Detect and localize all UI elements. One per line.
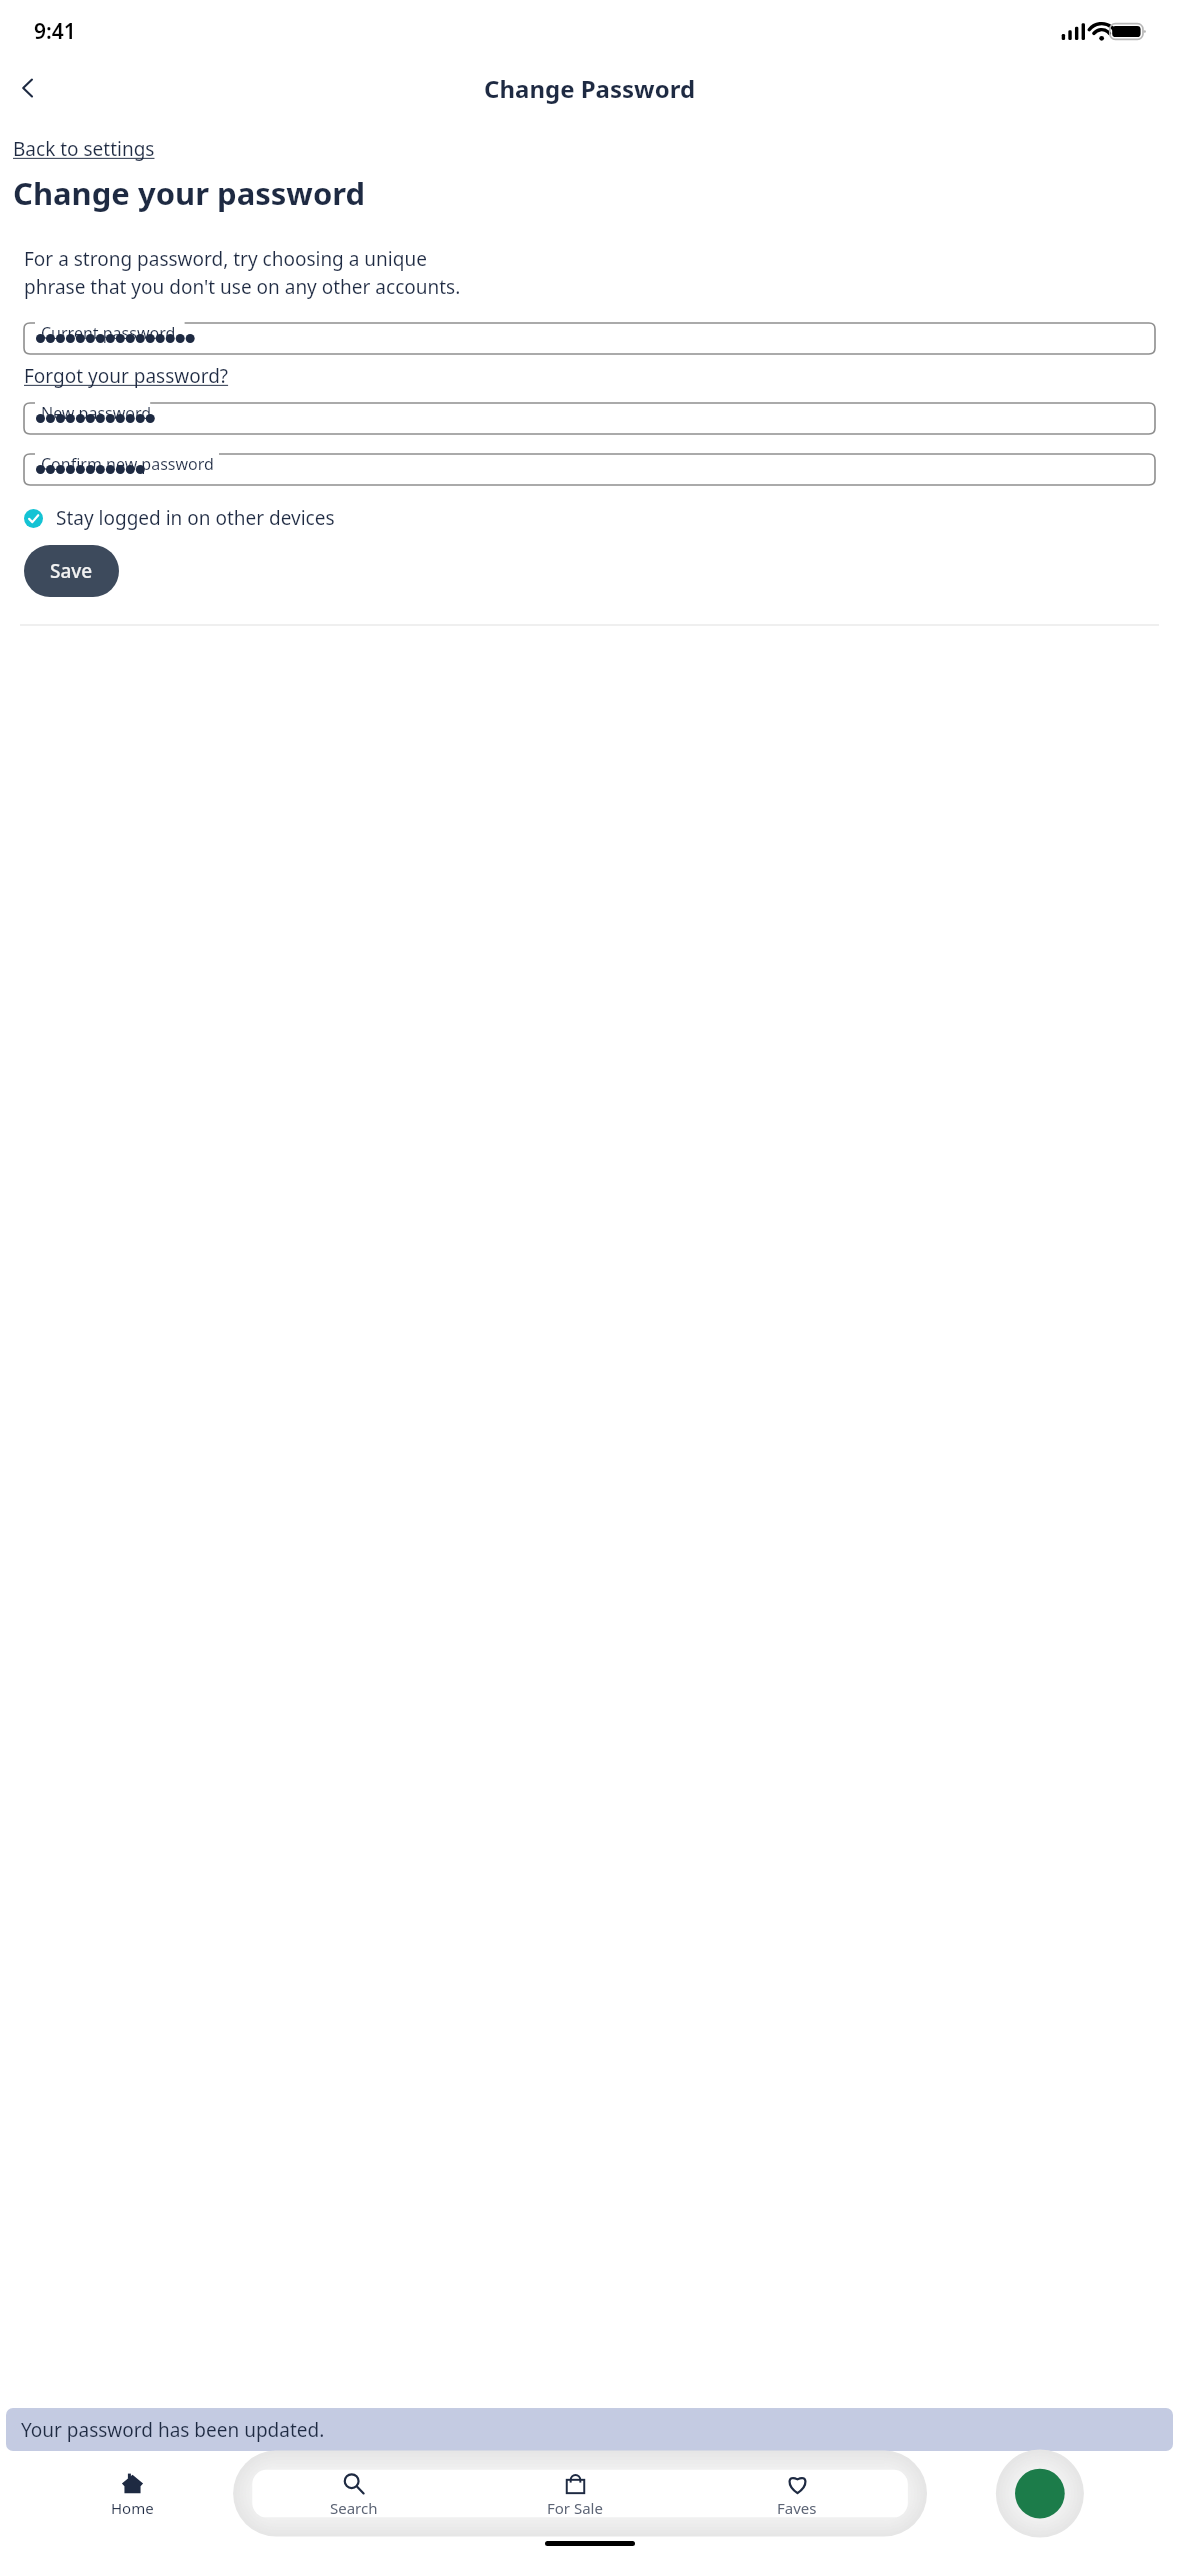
staticText: New password xyxy=(41,402,152,424)
button[interactable]: Home xyxy=(22,2459,243,2531)
staticText: For Sale xyxy=(547,2498,603,2518)
button[interactable] xyxy=(24,403,1155,434)
staticText: Change Password xyxy=(484,72,696,105)
staticText: 9:41 xyxy=(34,17,1179,46)
button[interactable]: Save xyxy=(24,545,119,597)
button[interactable]: Search xyxy=(243,2459,464,2531)
button[interactable]: Faves xyxy=(686,2459,908,2531)
button[interactable] xyxy=(24,454,1155,485)
staticText: Confirm new password xyxy=(41,453,214,475)
staticText: Current password xyxy=(41,322,176,344)
button[interactable]: Stay logged in on other devices xyxy=(24,502,335,534)
staticText: Your password has been updated. xyxy=(21,2417,325,2443)
button[interactable]: Back xyxy=(4,64,52,112)
staticText: Stay logged in on other devices xyxy=(56,505,335,531)
staticText: Save xyxy=(50,558,93,584)
staticText: Search xyxy=(330,2498,378,2518)
button[interactable]: Forgot your password? xyxy=(24,361,229,391)
staticText: For a strong password, try choosing a un… xyxy=(24,246,461,300)
staticText: Change your password xyxy=(13,172,366,214)
button[interactable]: For Sale xyxy=(464,2459,686,2531)
button[interactable] xyxy=(24,323,1155,354)
staticText: Faves xyxy=(777,2498,817,2518)
button[interactable]: Back to settings xyxy=(13,134,155,164)
staticText: Home xyxy=(111,2498,154,2518)
